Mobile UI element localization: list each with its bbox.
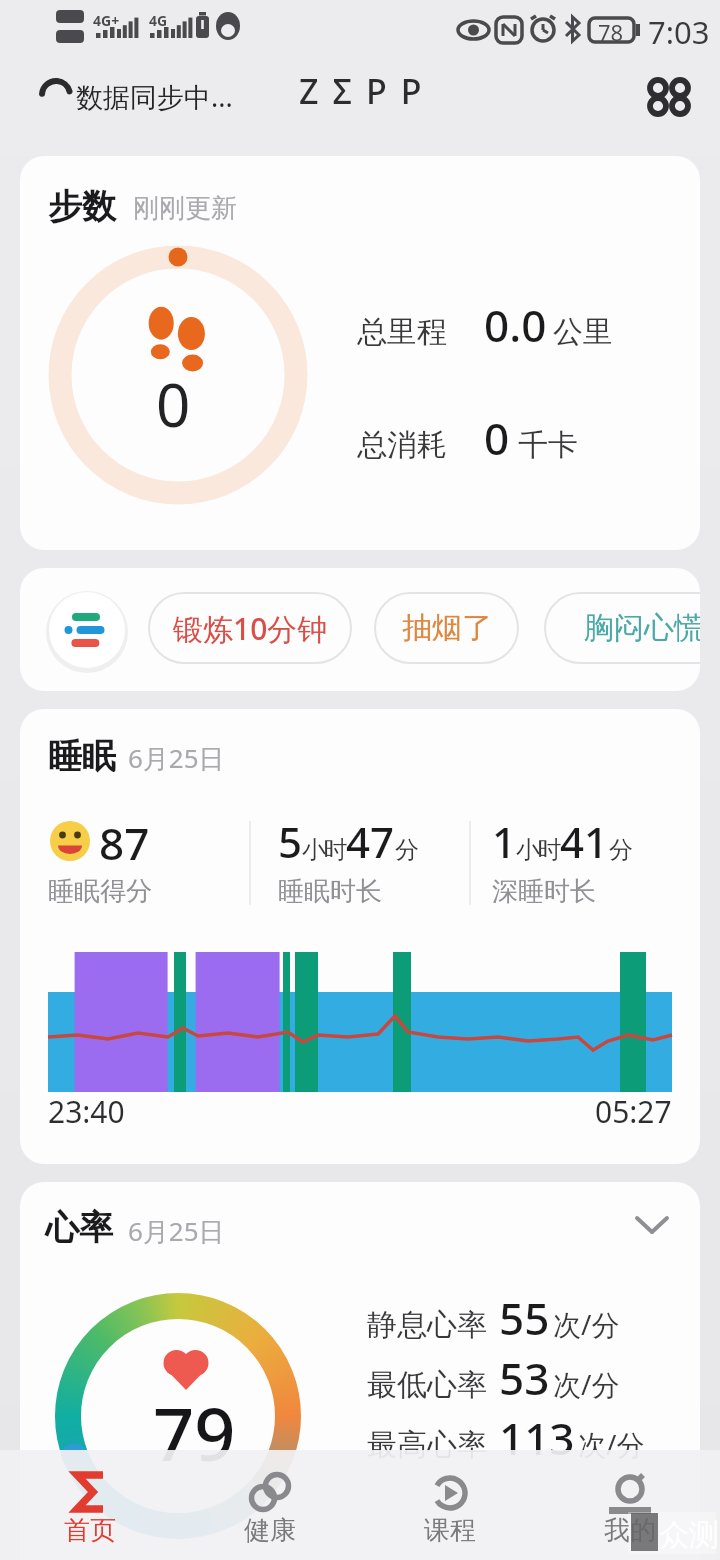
staticText: 78 bbox=[598, 17, 624, 47]
staticText: 分 bbox=[395, 835, 417, 865]
staticText: 锻炼10分钟 bbox=[173, 608, 328, 649]
button[interactable]: 我的 bbox=[540, 1450, 720, 1560]
staticText: 23:40 bbox=[48, 1091, 125, 1132]
staticText: 首页 bbox=[64, 1514, 116, 1547]
button[interactable] bbox=[49, 592, 125, 668]
staticText: 6月25日 bbox=[128, 740, 225, 776]
staticText: 4G+ bbox=[93, 11, 120, 30]
staticText: 0 bbox=[156, 363, 191, 445]
staticText: 睡眠 bbox=[48, 735, 116, 778]
staticText: 胸闷心慌 bbox=[584, 609, 700, 647]
staticText: 步数 bbox=[48, 185, 116, 228]
button[interactable] bbox=[638, 66, 694, 122]
staticText: 79 bbox=[153, 1384, 236, 1482]
staticText: 健康 bbox=[244, 1514, 296, 1547]
staticText: 次/分 bbox=[553, 1305, 620, 1343]
staticText: 次/分 bbox=[553, 1365, 620, 1403]
button[interactable]: 胸闷心慌 bbox=[544, 592, 700, 664]
staticText: 分 bbox=[609, 835, 631, 865]
staticText: 最低心率 bbox=[367, 1366, 487, 1404]
staticText: 05:27 bbox=[595, 1091, 672, 1132]
staticText: 我的 bbox=[604, 1514, 656, 1547]
staticText: 最高心率 bbox=[367, 1426, 487, 1464]
staticText: 4G bbox=[149, 11, 168, 30]
button[interactable]: 锻炼10分钟 bbox=[148, 592, 352, 664]
staticText: 0 bbox=[484, 408, 510, 468]
staticText: 47 bbox=[346, 813, 395, 870]
button[interactable]: 健康 bbox=[180, 1450, 360, 1560]
button[interactable]: 课程 bbox=[360, 1450, 540, 1560]
staticText: 刚刚更新 bbox=[133, 192, 237, 225]
staticText: 总消耗 bbox=[357, 426, 447, 464]
staticText: 0.0 bbox=[484, 295, 547, 355]
staticText: 静息心率 bbox=[367, 1306, 487, 1344]
staticText: 次/分 bbox=[578, 1425, 645, 1463]
button[interactable]: 首页 bbox=[0, 1450, 180, 1560]
staticText: 深睡时长 bbox=[492, 875, 596, 908]
staticText: 53 bbox=[499, 1348, 550, 1408]
button[interactable]: 睡眠 bbox=[20, 709, 700, 1164]
staticText: 总里程 bbox=[357, 313, 447, 351]
staticText: 7:03 bbox=[648, 11, 710, 53]
staticText: 113 bbox=[499, 1408, 575, 1468]
staticText: 41 bbox=[560, 813, 609, 870]
staticText: 87 bbox=[99, 813, 150, 873]
staticText: 6月25日 bbox=[128, 1213, 225, 1249]
staticText: 睡眠得分 bbox=[48, 875, 152, 908]
staticText: 千卡 bbox=[518, 426, 578, 464]
staticText: 公里 bbox=[553, 313, 613, 351]
button[interactable]: 步数 bbox=[20, 156, 700, 550]
staticText: 5 bbox=[278, 813, 303, 870]
staticText: 小时 bbox=[517, 835, 560, 865]
staticText: 抽烟了 bbox=[402, 609, 492, 647]
staticText: 小时 bbox=[303, 835, 346, 865]
button[interactable]: 心率 bbox=[20, 1182, 700, 1560]
staticText: 课程 bbox=[424, 1514, 476, 1547]
staticText: 心率 bbox=[45, 1206, 113, 1249]
staticText: 55 bbox=[499, 1288, 550, 1348]
staticText: 众测 bbox=[659, 1516, 719, 1554]
staticText: 1 bbox=[492, 813, 517, 870]
staticText: ZΣPP bbox=[299, 68, 436, 112]
button[interactable]: 抽烟了 bbox=[374, 592, 519, 664]
staticText: 睡眠时长 bbox=[278, 875, 382, 908]
staticText: 数据同步中... bbox=[76, 78, 233, 115]
